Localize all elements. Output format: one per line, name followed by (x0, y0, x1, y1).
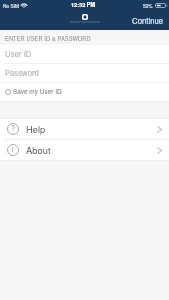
staticText: 52% (143, 2, 153, 9)
staticText: Password (5, 67, 39, 78)
button[interactable]: Save my User ID (0, 83, 169, 101)
button[interactable]: Continue (128, 14, 168, 27)
button[interactable]: User ID (0, 45, 169, 63)
button[interactable]: Password (0, 64, 169, 82)
staticText: Save my User ID (13, 87, 62, 96)
staticText: ? (11, 123, 15, 133)
staticText: i (12, 144, 14, 154)
staticText: User ID (5, 48, 32, 59)
other: Security National Bank logo (82, 14, 88, 20)
button[interactable]: ? (0, 119, 169, 139)
staticText: SECURITY NATIONAL BANK (70, 21, 100, 24)
staticText: ENTER USER ID & PASSWORD (5, 34, 91, 42)
staticText: Continue (132, 15, 164, 26)
button[interactable]: i (0, 140, 169, 160)
staticText: Help (26, 122, 46, 135)
staticText: No SIM (3, 2, 19, 9)
staticText: About (26, 143, 51, 156)
staticText: 12:32 PM (71, 1, 96, 9)
